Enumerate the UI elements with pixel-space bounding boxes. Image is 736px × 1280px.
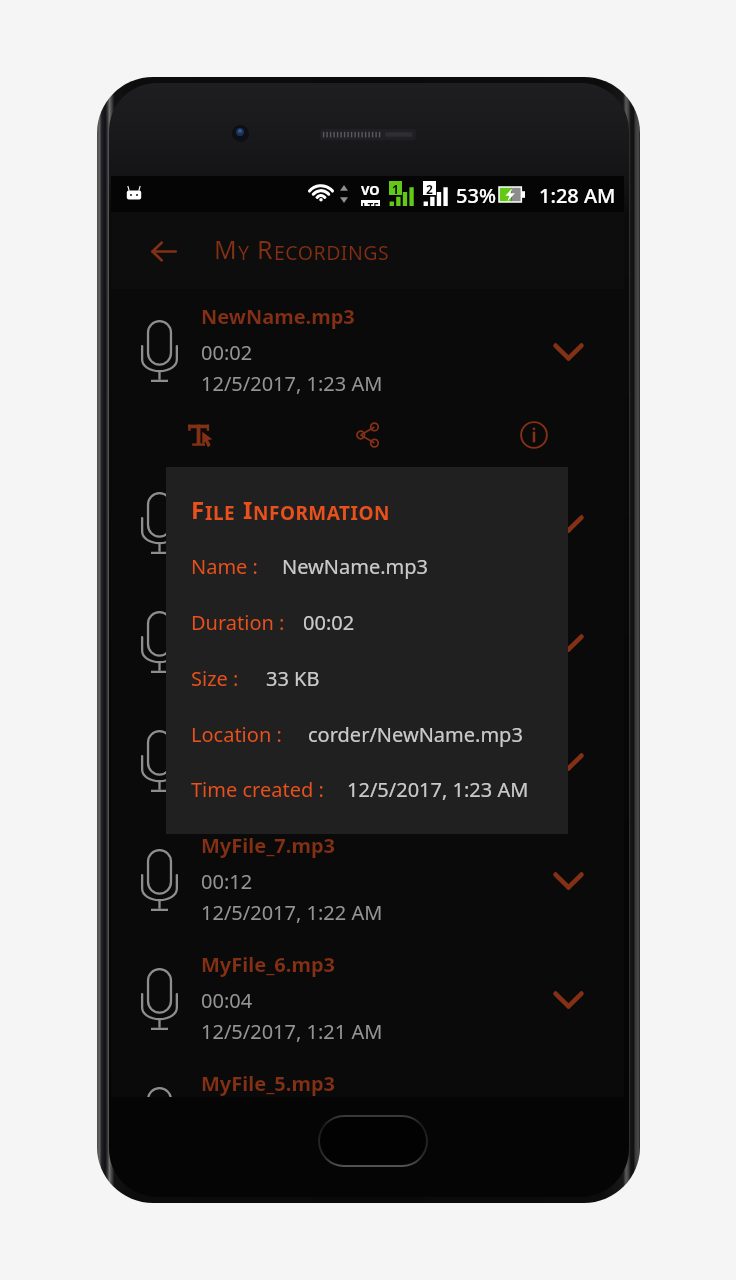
staticText: VO xyxy=(361,181,380,199)
staticText: Location : xyxy=(191,721,282,748)
staticText: R xyxy=(257,232,274,266)
staticText: 12/5/2017, 1:23 AM xyxy=(201,542,383,569)
staticText: NewName.mp3 xyxy=(201,303,355,330)
staticText: Time created : xyxy=(191,776,324,803)
staticText: 12/5/2017, 1:21 AM xyxy=(201,1018,383,1045)
staticText: MyFile_6.mp3 xyxy=(201,951,335,978)
staticText: MyFile_9.mp3 xyxy=(201,594,335,621)
staticText: I xyxy=(243,493,253,526)
staticText: 00:04 xyxy=(201,987,253,1014)
staticText: 33 KB xyxy=(266,665,320,692)
button[interactable]: MyFile_7.mp3 xyxy=(111,818,624,937)
button[interactable]: MyFile_9.mp3 xyxy=(111,580,624,699)
staticText: Size : xyxy=(191,665,239,692)
button[interactable]: Back xyxy=(139,227,187,275)
staticText: NewName.mp3 xyxy=(282,553,428,580)
staticText: corder/NewName.mp3 xyxy=(308,721,523,748)
button[interactable]: MyFile_10.mp3 xyxy=(111,461,624,580)
staticText: 12/5/2017, 1:23 AM xyxy=(201,370,383,397)
button[interactable]: NewName.mp3 xyxy=(111,289,624,408)
staticText: M xyxy=(214,232,238,266)
staticText: MyFile_5.mp3 xyxy=(201,1070,335,1097)
button[interactable]: Expand details xyxy=(542,617,594,669)
staticText: 2 xyxy=(426,181,433,195)
staticText: Name : xyxy=(191,553,258,580)
staticText: 00:02 xyxy=(303,609,355,636)
button[interactable]: MyFile_8.mp3 xyxy=(111,699,624,818)
staticText: Duration : xyxy=(191,609,285,636)
button[interactable]: Rename xyxy=(174,409,226,461)
staticText: 53% xyxy=(456,182,496,209)
button[interactable]: Expand details xyxy=(542,326,594,378)
button[interactable]: Expand details xyxy=(542,855,594,907)
staticText: LTE xyxy=(362,200,379,206)
staticText: 12/5/2017, 1:22 AM xyxy=(201,899,383,926)
staticText: 00:06 xyxy=(201,511,253,538)
staticText: Y xyxy=(238,239,250,266)
staticText: 1 xyxy=(392,181,399,195)
staticText: ECORDINGS xyxy=(274,239,390,266)
button[interactable]: MyFile_6.mp3 xyxy=(111,937,624,1056)
staticText: F xyxy=(191,493,205,526)
button[interactable]: MyFile_5.mp3 xyxy=(111,1056,624,1097)
staticText: 12/5/2017, 1:22 AM xyxy=(201,780,383,807)
button[interactable]: Expand details xyxy=(542,498,594,550)
button[interactable]: File information xyxy=(508,409,560,461)
staticText: 1:28 AM xyxy=(539,182,616,209)
staticText: MyFile_8.mp3 xyxy=(201,713,335,740)
staticText: MyFile_7.mp3 xyxy=(201,832,335,859)
staticText: 12/5/2017, 1:23 AM xyxy=(201,661,383,688)
staticText: ILE xyxy=(205,500,236,526)
staticText: 00:02 xyxy=(201,339,253,366)
button[interactable]: Expand details xyxy=(542,736,594,788)
button[interactable]: Share xyxy=(342,409,394,461)
button[interactable]: Expand details xyxy=(542,974,594,1026)
staticText: NFORMATION xyxy=(253,500,390,526)
staticText: 12/5/2017, 1:23 AM xyxy=(347,776,529,803)
staticText: 00:12 xyxy=(201,868,253,895)
